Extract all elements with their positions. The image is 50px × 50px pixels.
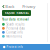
staticText: Monitoring bbox=[6, 35, 22, 38]
button[interactable]: Search results bbox=[0, 22, 50, 26]
staticText: Personal data bbox=[6, 27, 24, 30]
button[interactable]: Back bbox=[0, 4, 14, 9]
staticText: Protect info bbox=[6, 45, 23, 49]
staticText: Search results bbox=[6, 23, 24, 26]
button[interactable]: REQUEST REMOVAL bbox=[2, 10, 31, 16]
button[interactable]: Contact info bbox=[0, 30, 50, 34]
button[interactable]: Monitoring bbox=[0, 34, 50, 38]
staticText: Your data removal bbox=[2, 18, 29, 21]
staticText: Back bbox=[5, 4, 14, 9]
staticText: Privacy bbox=[22, 4, 35, 9]
staticText: REQUEST REMOVAL bbox=[4, 11, 28, 15]
staticText: Contact info bbox=[6, 31, 23, 34]
button[interactable]: Personal data bbox=[0, 26, 50, 30]
